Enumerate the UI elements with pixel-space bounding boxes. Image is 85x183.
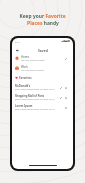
- button[interactable]: Shopping Mall of Paris: [12, 93, 73, 101]
- staticText: Places handy: [27, 20, 59, 27]
- button[interactable]: Delete: [63, 105, 68, 110]
- staticText: Set your home location: [21, 59, 45, 62]
- button[interactable]: McDonald's: [12, 83, 73, 91]
- staticText: Jalan Lorem Ipsum Dolor Sit Amet No 12 K…: [15, 108, 58, 111]
- button[interactable]: Edit: [63, 56, 68, 61]
- staticText: Set your work location: [21, 69, 44, 72]
- staticText: 9:41: [15, 40, 20, 43]
- button[interactable]: Delete: [63, 85, 68, 90]
- button[interactable]: Back: [14, 47, 20, 53]
- button[interactable]: Home: [12, 54, 73, 62]
- staticText: Saved: [38, 48, 48, 53]
- staticText: McDonald's: [15, 84, 31, 88]
- staticText: Work: [21, 65, 28, 69]
- staticText: Lorem Ipsum: [15, 104, 33, 108]
- staticText: Keep your Favorite: [19, 13, 66, 20]
- staticText: Jalan Lorem Ipsum Dolor Sit Amet No 12 K…: [15, 98, 58, 101]
- button[interactable]: Edit: [58, 95, 63, 100]
- staticText: Home: [21, 55, 29, 59]
- staticText: Jalan Lorem Ipsum Dolor Sit Amet No 12 K…: [15, 88, 58, 91]
- button[interactable]: Lorem Ipsum: [12, 103, 73, 111]
- button[interactable]: Work: [12, 64, 73, 72]
- staticText: Favorites: [19, 76, 32, 80]
- button[interactable]: Edit: [58, 85, 63, 90]
- button[interactable]: Delete: [63, 95, 68, 100]
- staticText: Shopping Mall of Paris: [15, 94, 45, 98]
